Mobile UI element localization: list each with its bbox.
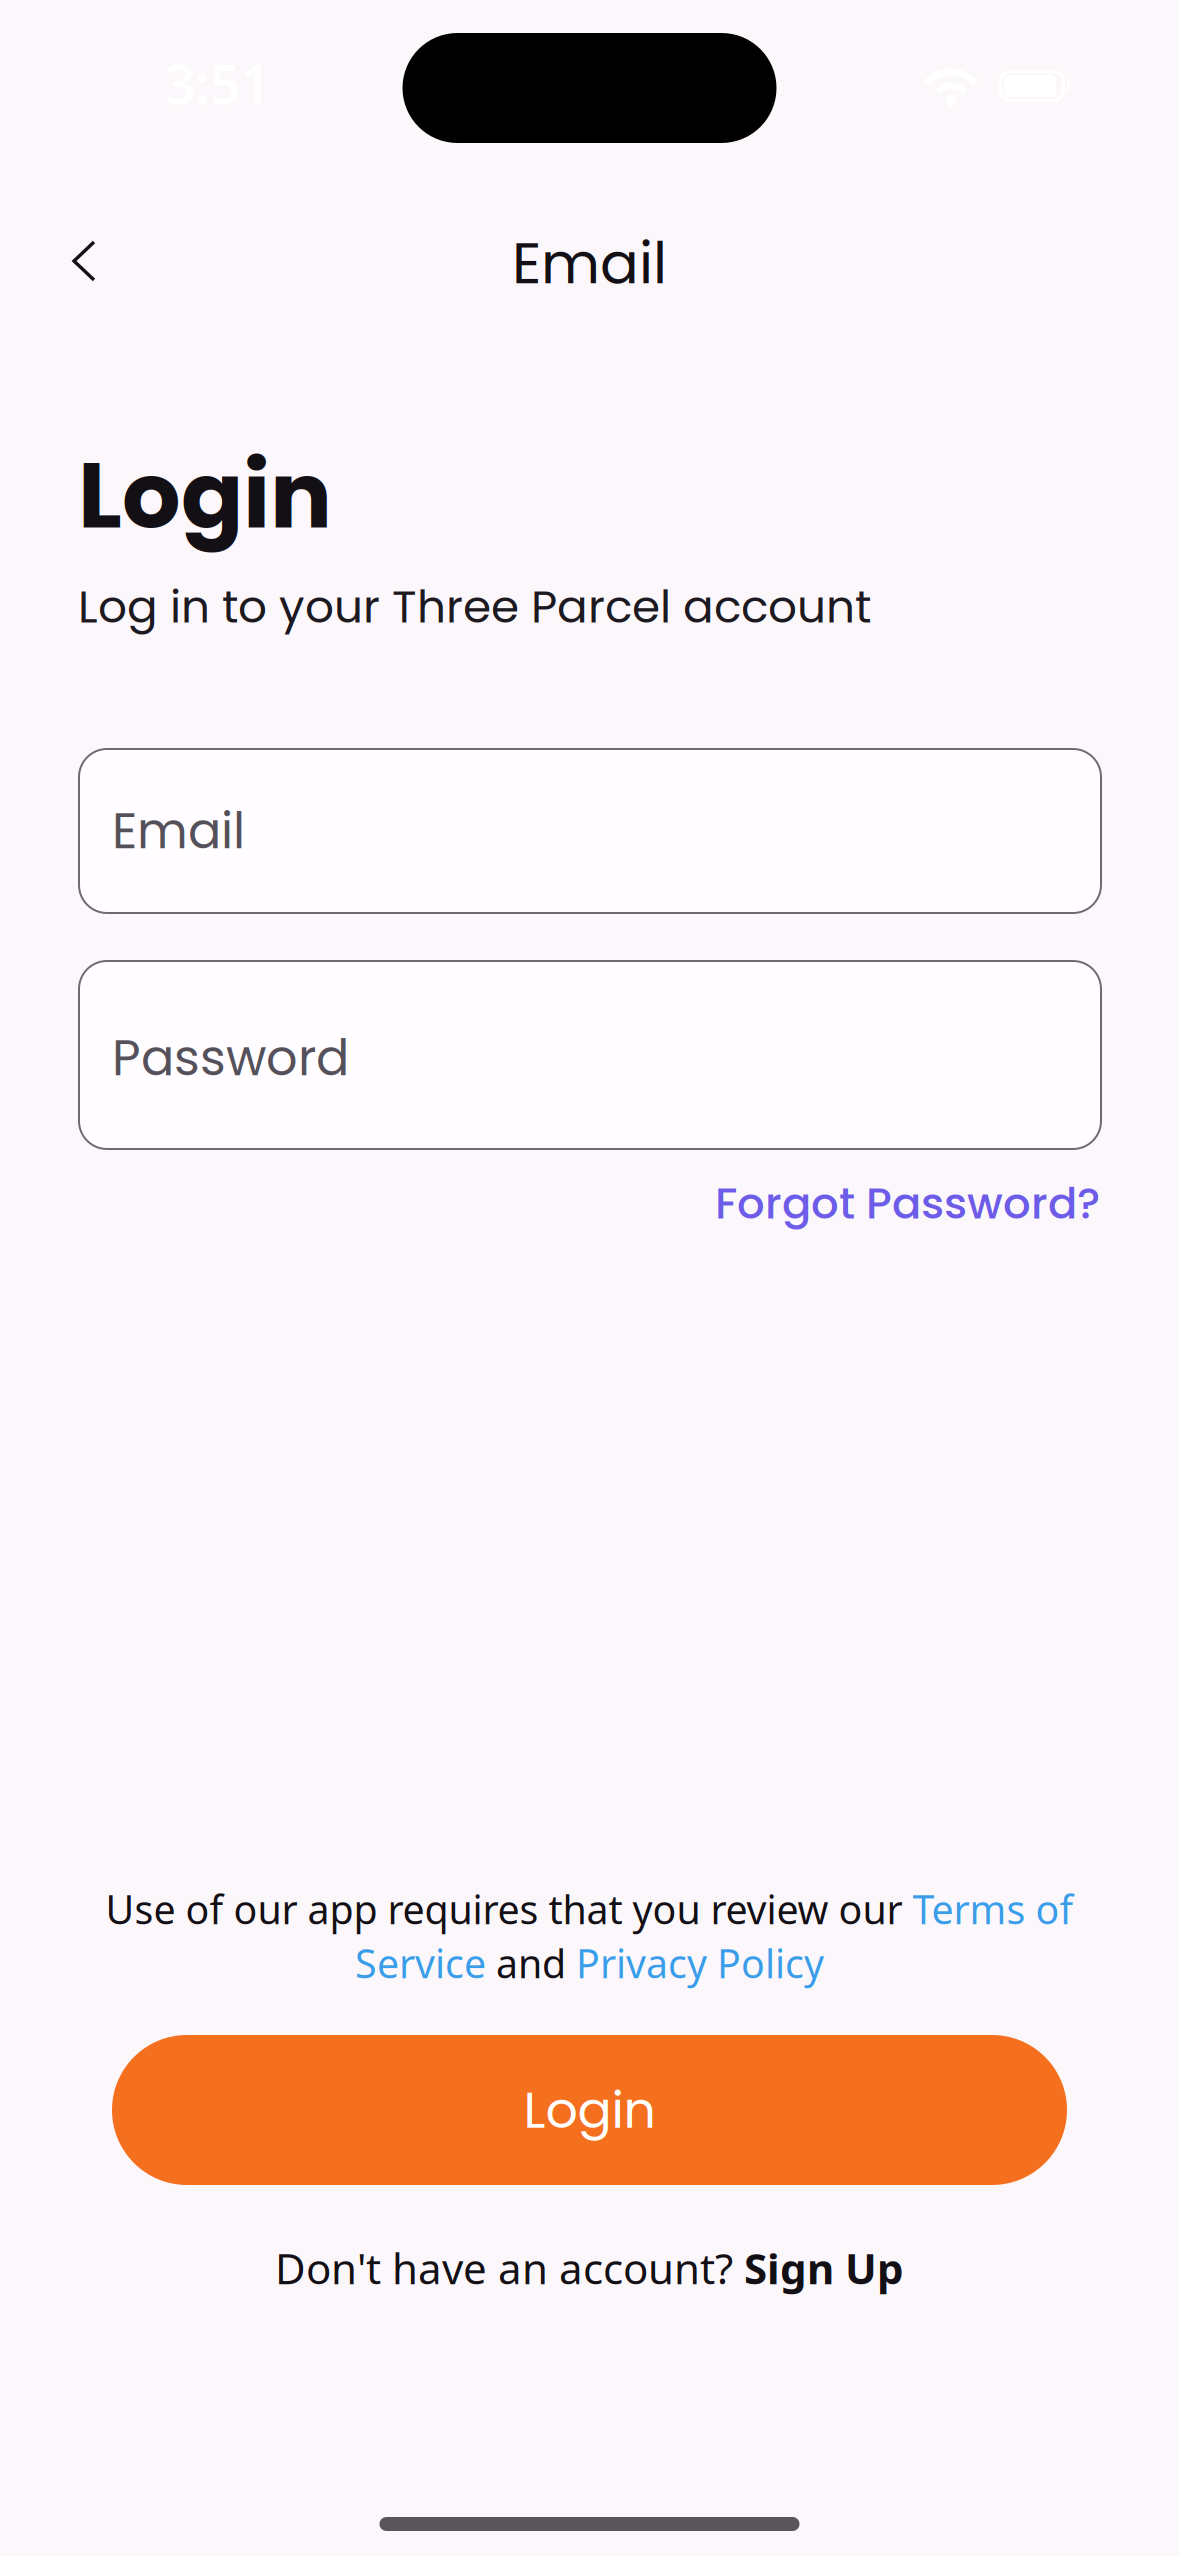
staticText: Login [78,431,332,560]
staticText: Login [523,2074,655,2145]
button[interactable] [72,239,98,283]
staticText: Email [112,796,245,865]
staticText: Privacy Policy [576,1937,824,1989]
staticText: Sign Up [744,2240,904,2296]
staticText: Terms of [912,1883,1073,1935]
button[interactable]: Forgot Password? [715,1173,1100,1234]
button[interactable]: Service [355,1937,486,1989]
button[interactable]: Email [78,748,1102,914]
staticText: Service [355,1937,486,1989]
staticText: Log in to your Three Parcel account [78,575,871,638]
staticText: Email [512,223,667,303]
button[interactable]: Password [78,960,1102,1150]
button[interactable]: Login [112,2035,1067,2185]
staticText: Forgot Password? [715,1173,1100,1234]
button[interactable]: Sign Up [744,2240,904,2296]
staticText: and [486,1937,576,1989]
staticText: Don't have an account? [275,2240,744,2296]
staticText: Password [112,1023,349,1092]
button[interactable]: Terms of [912,1883,1073,1935]
button[interactable]: Privacy Policy [576,1937,824,1989]
staticText: Use of our app requires that you review … [105,1883,912,1935]
staticText: 3:51 [165,48,270,119]
